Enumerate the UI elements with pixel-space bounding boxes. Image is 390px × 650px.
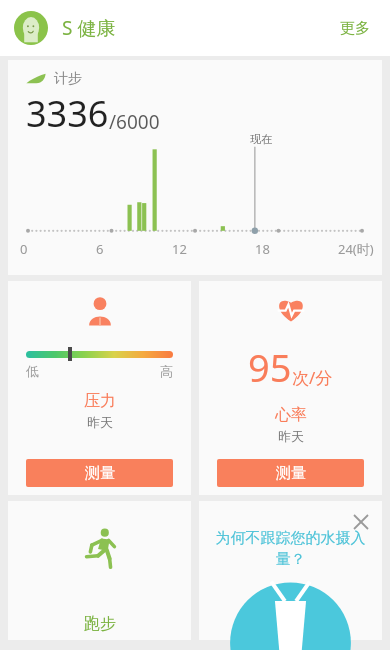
staticText: 跑步 [84,614,116,634]
staticText: 更多 [340,19,370,38]
staticText: 6 [96,240,104,258]
button[interactable]: Close [199,501,382,640]
staticText: 24(时) [338,240,374,258]
staticText: 12 [172,240,187,258]
staticText: 计步 [54,70,82,88]
staticText: /6000 [109,109,160,135]
button[interactable]: 低 [8,281,191,495]
button[interactable]: 测量 [217,459,364,487]
staticText: 现在 [250,132,272,146]
button[interactable]: Profile [14,11,48,45]
button[interactable]: 95 [199,281,382,495]
staticText: 昨天 [87,414,113,430]
staticText: 为何不跟踪您的水摄入量？ [215,529,366,569]
button[interactable]: 测量 [26,459,173,487]
staticText: 高 [160,363,173,379]
staticText: S 健康 [62,15,116,41]
button[interactable]: 跑步 [8,501,191,640]
staticText: 压力 [84,391,116,411]
staticText: 测量 [85,464,115,483]
staticText: 心率 [275,405,307,425]
staticText: 95 [248,341,292,393]
button[interactable]: 更多 [334,13,376,44]
staticText: 18 [255,240,270,258]
staticText: 测量 [276,464,306,483]
button[interactable]: Close [346,507,376,537]
staticText: 3336 [26,89,109,138]
button[interactable]: 计步 [8,60,382,275]
staticText: 低 [26,363,39,379]
staticText: 次/分 [292,366,333,389]
staticText: 0 [20,240,28,258]
staticText: 昨天 [278,428,304,444]
